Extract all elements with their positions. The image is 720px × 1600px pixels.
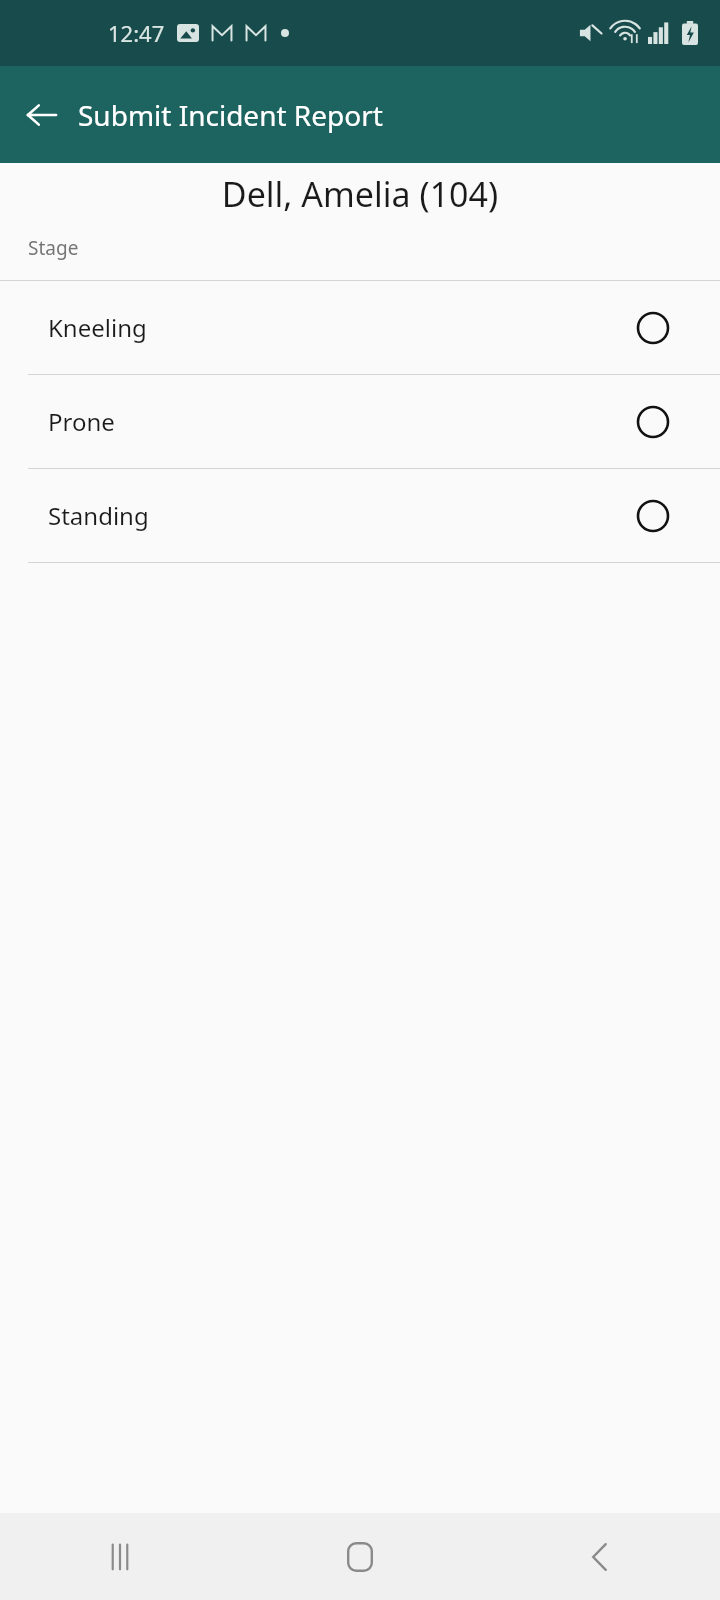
button[interactable]: Standing <box>0 469 720 562</box>
button[interactable]: Kneeling <box>0 281 720 374</box>
staticText: 12:47 <box>108 18 165 48</box>
button[interactable]: Recent apps <box>60 1513 180 1600</box>
button[interactable]: Home <box>300 1513 420 1600</box>
staticText: Kneeling <box>48 311 636 344</box>
staticText: Standing <box>48 499 636 532</box>
staticText: Submit Incident Report <box>78 96 383 134</box>
staticText: Stage <box>28 235 79 261</box>
button[interactable]: Back <box>540 1513 660 1600</box>
button[interactable]: Back <box>14 87 70 143</box>
button[interactable]: Prone <box>0 375 720 468</box>
staticText: Dell, Amelia (104) <box>0 171 720 217</box>
staticText: Prone <box>48 405 636 438</box>
